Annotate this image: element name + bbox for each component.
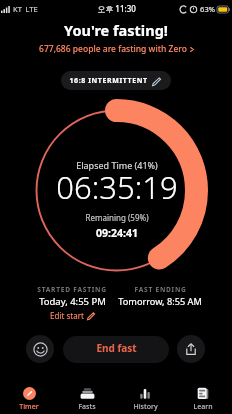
button[interactable]: Share: [177, 335, 205, 363]
staticText: FAST ENDING: [134, 285, 187, 294]
staticText: STARTED FASTING: [37, 285, 107, 294]
button[interactable]: Timer: [0, 384, 58, 412]
staticText: Timer: [19, 402, 39, 412]
staticText: Learn: [193, 402, 213, 412]
staticText: LTE: [25, 4, 38, 14]
button[interactable]: End fast: [63, 336, 169, 363]
staticText: Elapsed Time (41%): [76, 159, 158, 171]
staticText: 09:24:41: [96, 226, 138, 240]
staticText: History: [133, 402, 158, 412]
staticText: Edit start: [50, 310, 84, 321]
button[interactable]: 677,686 people are fasting with Zero: [39, 43, 194, 55]
staticText: Remaining (59%): [85, 212, 149, 223]
staticText: 06:35:19: [56, 166, 178, 208]
button[interactable]: Edit start: [50, 310, 95, 321]
button[interactable]: 16:8 INTERMITTENT: [61, 71, 171, 90]
staticText: End fast: [96, 341, 137, 355]
staticText: Tomorrow, 8:55 AM: [118, 295, 202, 308]
staticText: Today, 4:55 PM: [39, 295, 106, 308]
staticText: 677,686 people are fasting with Zero: [39, 43, 187, 55]
button[interactable]: Fasts: [58, 384, 116, 412]
staticText: Fasts: [78, 402, 96, 412]
button[interactable]: Learn: [174, 384, 232, 412]
staticText: 16:8 INTERMITTENT: [69, 76, 148, 86]
staticText: 오후 11:30: [97, 3, 136, 14]
staticText: 63%: [200, 4, 215, 14]
button[interactable]: Mood: [26, 335, 54, 363]
staticText: You're fasting!: [64, 20, 168, 40]
staticText: KT: [13, 4, 22, 14]
button[interactable]: History: [116, 384, 174, 412]
